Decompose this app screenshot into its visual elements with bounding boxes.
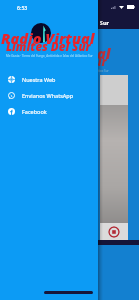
staticText: Limites Del Sur — [22, 54, 107, 70]
button[interactable]: Facebook — [0, 103, 98, 119]
button[interactable]: Stop — [108, 226, 120, 238]
staticText: Radio Virtual — [17, 43, 111, 63]
staticText: 6:53 — [17, 4, 28, 11]
staticText: Radio Virtual — [1, 28, 95, 48]
staticText: Me Gusta · Tierra del Fuego, Antártida e… — [22, 69, 109, 73]
staticText: Radio Virtual Limites Del Sur — [31, 19, 109, 26]
staticText: Me Gusta · Tierra del Fuego, Antártida e… — [6, 54, 93, 58]
staticText: Facebook — [22, 108, 47, 115]
button[interactable]: Nuestra Web — [0, 71, 98, 87]
staticText: Nuestra Web — [22, 76, 56, 83]
button[interactable]: Envianos WhatsApp — [0, 87, 98, 103]
staticText: Envianos WhatsApp — [22, 92, 74, 99]
staticText: Limites Del Sur — [6, 39, 91, 55]
